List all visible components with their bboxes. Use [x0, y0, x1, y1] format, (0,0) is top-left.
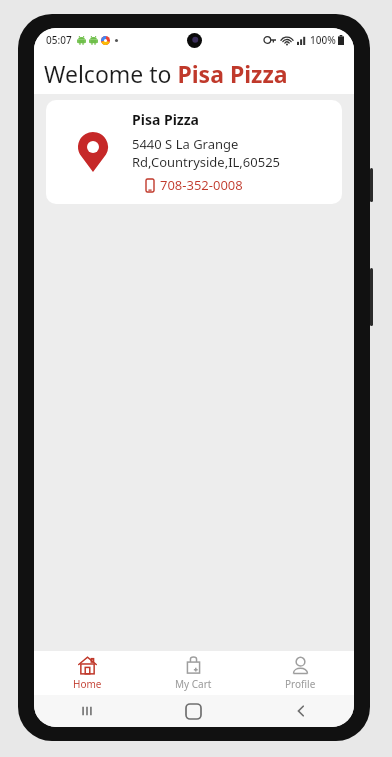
staticText: Home: [73, 677, 102, 691]
staticText: 5440 S La Grange: [132, 135, 239, 153]
staticText: Profile: [285, 677, 316, 691]
button[interactable]: Home: [34, 651, 140, 695]
staticText: 708-352-0008: [160, 176, 243, 194]
button[interactable]: My Cart: [140, 651, 247, 695]
staticText: Pisa Pizza: [132, 110, 200, 129]
staticText: Welcome to Pisa Pizza: [44, 58, 288, 89]
staticText: My Cart: [175, 677, 212, 691]
button[interactable]: Pisa Pizza: [46, 100, 342, 204]
staticText: 05:07: [46, 33, 72, 47]
button[interactable]: Back: [247, 695, 354, 727]
button[interactable]: Profile: [247, 651, 354, 695]
button[interactable]: 708-352-0008: [146, 176, 243, 194]
button[interactable]: Home: [140, 695, 247, 727]
staticText: 100%: [310, 33, 336, 47]
button[interactable]: Recent apps: [34, 695, 140, 727]
staticText: Rd,Countryside,IL,60525: [132, 153, 281, 171]
